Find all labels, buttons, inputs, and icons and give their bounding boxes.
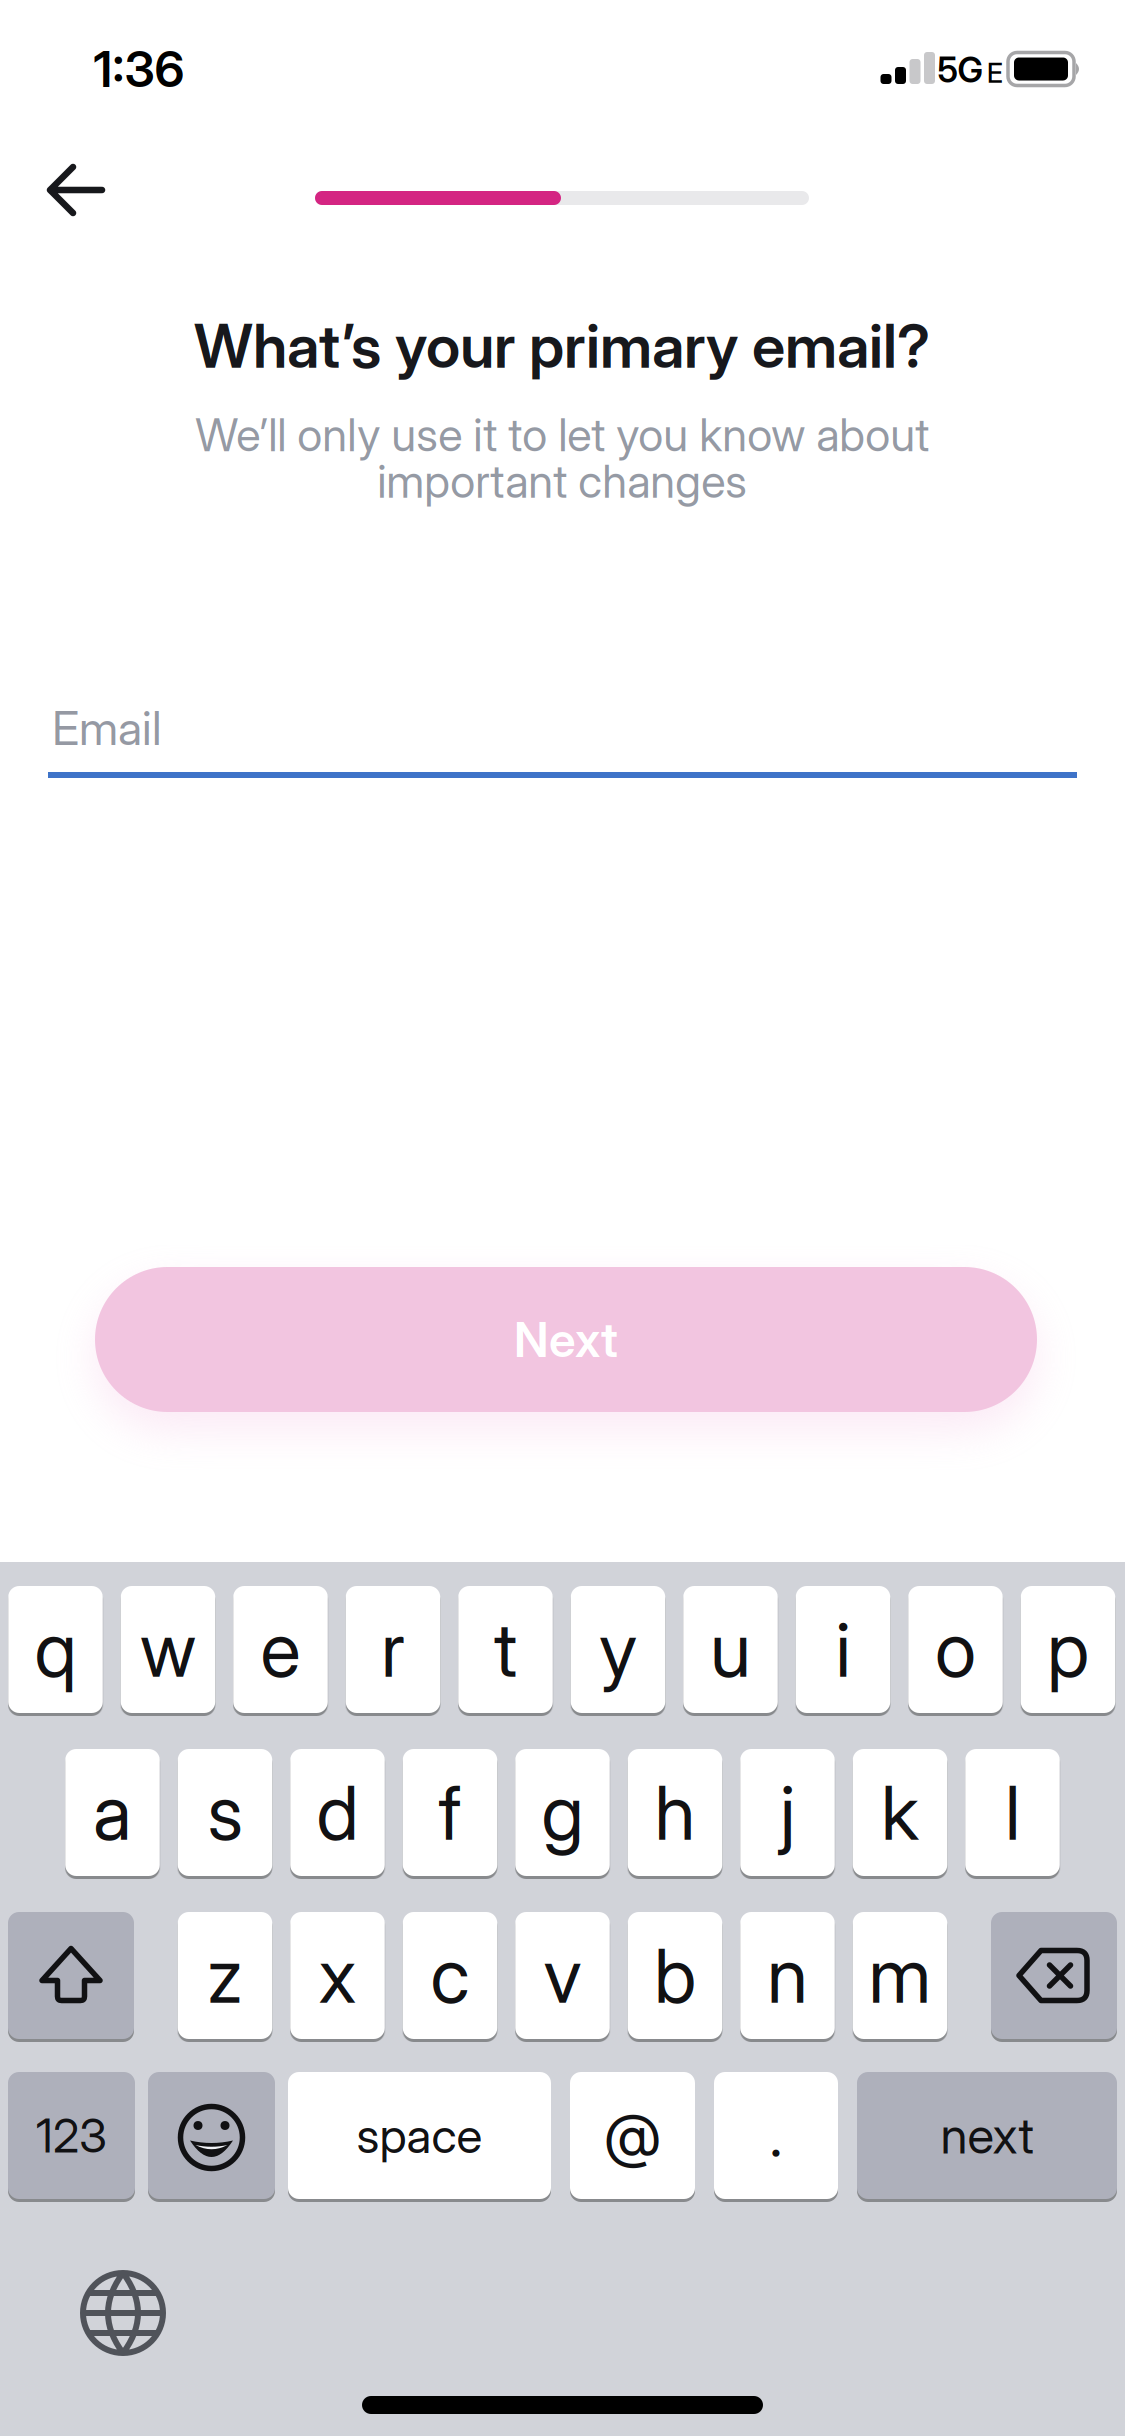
button[interactable]: u xyxy=(683,1586,778,1713)
staticText: d xyxy=(316,1768,358,1857)
staticText: . xyxy=(769,2101,782,2170)
button[interactable]: space xyxy=(288,2072,551,2199)
button[interactable]: b xyxy=(628,1912,722,2039)
button[interactable]: k xyxy=(853,1749,947,1876)
button[interactable]: t xyxy=(458,1586,553,1713)
button[interactable]: e xyxy=(233,1586,328,1713)
button[interactable]: m xyxy=(853,1912,947,2039)
button[interactable]: . xyxy=(714,2072,838,2199)
staticText: c xyxy=(430,1931,469,2020)
button[interactable]: n xyxy=(740,1912,835,2039)
staticText: f xyxy=(438,1768,461,1857)
button[interactable]: next xyxy=(857,2072,1117,2199)
button[interactable]: Delete xyxy=(991,1912,1117,2039)
button[interactable]: p xyxy=(1021,1586,1115,1713)
staticText: We’ll only use it to let you know about … xyxy=(195,408,929,508)
button[interactable]: s xyxy=(178,1749,272,1876)
staticText: s xyxy=(207,1768,242,1857)
staticText: j xyxy=(780,1768,795,1857)
button[interactable]: 123 xyxy=(8,2072,135,2199)
staticText: y xyxy=(599,1605,637,1694)
button[interactable]: z xyxy=(178,1912,272,2039)
staticText: x xyxy=(318,1931,356,2020)
staticText: 123 xyxy=(36,2108,107,2163)
staticText: b xyxy=(654,1931,696,2020)
staticText: 5G xyxy=(937,50,982,90)
staticText: m xyxy=(868,1931,931,2020)
button[interactable]: h xyxy=(628,1749,722,1876)
staticText: l xyxy=(1005,1768,1020,1857)
button[interactable]: Back xyxy=(21,135,131,245)
staticText: Email xyxy=(52,700,162,756)
button[interactable]: l xyxy=(965,1749,1060,1876)
button[interactable]: g xyxy=(515,1749,610,1876)
staticText: g xyxy=(541,1768,583,1857)
staticText: w xyxy=(140,1605,196,1694)
button[interactable]: @ xyxy=(570,2072,695,2199)
button[interactable]: Email xyxy=(48,682,1077,778)
staticText: v xyxy=(543,1931,581,2020)
button[interactable]: i xyxy=(796,1586,890,1713)
staticText: Next xyxy=(514,1311,618,1368)
staticText: What’s your primary email? xyxy=(194,311,930,381)
button[interactable]: c xyxy=(403,1912,497,2039)
button[interactable]: Shift xyxy=(8,1912,134,2039)
staticText: @ xyxy=(604,2101,661,2170)
button[interactable]: Next xyxy=(95,1267,1037,1412)
staticText: n xyxy=(767,1931,808,2020)
staticText: t xyxy=(494,1605,517,1694)
button[interactable]: f xyxy=(403,1749,497,1876)
button[interactable]: j xyxy=(740,1749,835,1876)
staticText: q xyxy=(34,1605,76,1694)
button[interactable]: q xyxy=(8,1586,103,1713)
button[interactable]: a xyxy=(65,1749,160,1876)
staticText: i xyxy=(835,1605,850,1694)
button[interactable]: r xyxy=(346,1586,440,1713)
staticText: r xyxy=(381,1605,405,1694)
button[interactable]: v xyxy=(515,1912,610,2039)
button[interactable]: Emoji xyxy=(148,2072,275,2199)
staticText: space xyxy=(356,2107,482,2164)
button[interactable]: w xyxy=(121,1586,215,1713)
staticText: u xyxy=(710,1605,751,1694)
staticText: o xyxy=(935,1605,976,1694)
staticText: e xyxy=(260,1605,300,1694)
staticText: next xyxy=(940,2106,1033,2165)
button[interactable]: o xyxy=(908,1586,1003,1713)
staticText: a xyxy=(93,1768,132,1857)
button[interactable]: d xyxy=(290,1749,385,1876)
button[interactable]: x xyxy=(290,1912,385,2039)
staticText: k xyxy=(881,1768,919,1857)
button[interactable]: y xyxy=(571,1586,665,1713)
button[interactable]: Next keyboard xyxy=(68,2258,178,2368)
staticText: 1:36 xyxy=(93,40,184,98)
staticText: h xyxy=(654,1768,695,1857)
staticText: E xyxy=(987,57,1003,89)
staticText: z xyxy=(207,1931,243,2020)
staticText: p xyxy=(1047,1605,1089,1694)
